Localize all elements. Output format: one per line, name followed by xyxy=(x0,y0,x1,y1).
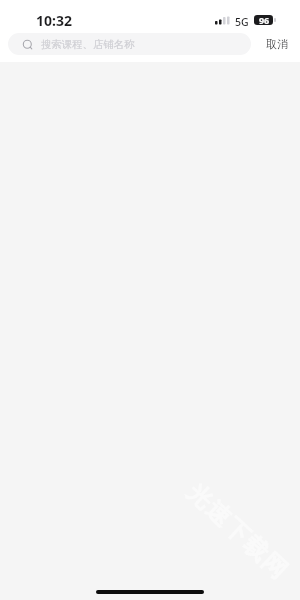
staticText: 搜索课程、店铺名称 xyxy=(41,38,135,51)
staticText: 96 xyxy=(259,15,269,24)
staticText: 5G xyxy=(235,15,249,29)
button[interactable]: 搜索课程、店铺名称 xyxy=(8,33,251,55)
staticText: 取消 xyxy=(266,37,288,51)
staticText: 10:32 xyxy=(36,11,72,30)
button[interactable]: 取消 xyxy=(259,33,295,55)
